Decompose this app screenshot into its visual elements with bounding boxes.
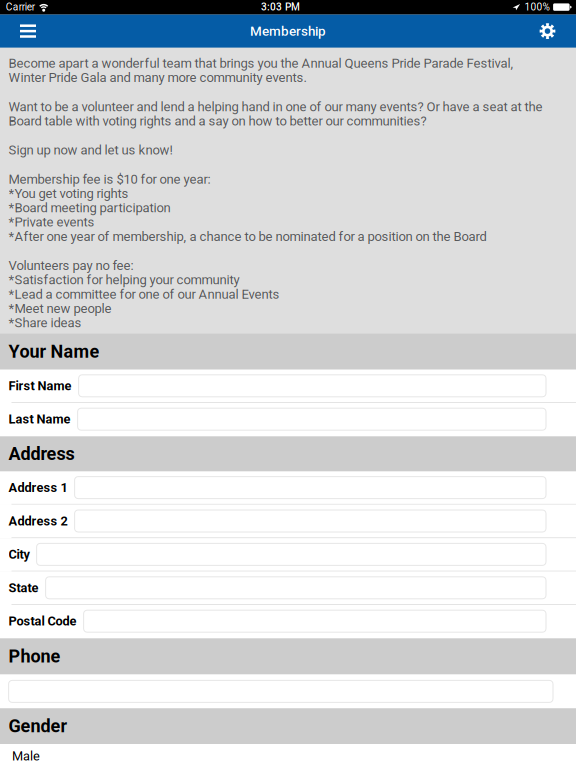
staticText: Want to be a volunteer and lend a helpin… bbox=[9, 99, 543, 129]
staticText: Sign up now and let us know! bbox=[9, 142, 173, 158]
staticText: City bbox=[9, 547, 30, 562]
staticText: Gender bbox=[9, 716, 68, 737]
button[interactable]: City bbox=[0, 538, 576, 572]
button[interactable]: State bbox=[0, 572, 576, 605]
staticText: Address 1 bbox=[9, 480, 68, 495]
staticText: Membership fee is $10 for one year: *You… bbox=[9, 172, 487, 244]
button[interactable]: Postal Code bbox=[0, 605, 576, 638]
staticText: Male bbox=[12, 749, 40, 764]
staticText: Last Name bbox=[9, 412, 71, 427]
button[interactable]: Last Name bbox=[0, 403, 576, 436]
staticText: Become apart a wonderful team that bring… bbox=[9, 56, 514, 85]
staticText: Address 2 bbox=[9, 513, 68, 528]
button[interactable]: Male bbox=[0, 744, 576, 768]
staticText: Your Name bbox=[9, 341, 100, 362]
staticText: Address bbox=[9, 443, 75, 464]
button[interactable]: Address 1 bbox=[0, 471, 576, 505]
staticText: 3:03 PM bbox=[261, 1, 300, 13]
button[interactable] bbox=[0, 674, 576, 708]
staticText: Membership bbox=[250, 23, 326, 39]
button[interactable]: Menu bbox=[6, 15, 50, 48]
staticText: 100% bbox=[525, 1, 550, 13]
staticText: Volunteers pay no fee: *Satisfaction for… bbox=[9, 258, 280, 330]
button[interactable]: First Name bbox=[0, 370, 576, 403]
button[interactable]: Settings bbox=[525, 15, 569, 48]
button[interactable]: Address 2 bbox=[0, 505, 576, 538]
staticText: State bbox=[9, 580, 39, 595]
staticText: Phone bbox=[9, 646, 61, 667]
staticText: First Name bbox=[9, 378, 72, 393]
staticText: Carrier bbox=[6, 1, 35, 13]
staticText: Postal Code bbox=[9, 614, 77, 629]
